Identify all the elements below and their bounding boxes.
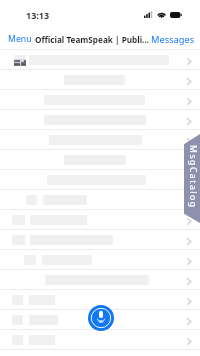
staticText: Menu bbox=[8, 33, 32, 45]
button[interactable] bbox=[0, 130, 200, 150]
button[interactable]: Menu bbox=[8, 33, 32, 45]
button[interactable] bbox=[0, 210, 200, 230]
button[interactable] bbox=[0, 90, 200, 110]
staticText: MsgCatalog bbox=[187, 145, 199, 209]
staticText: Messages bbox=[151, 33, 195, 46]
button[interactable] bbox=[0, 50, 200, 70]
staticText: 13:13 bbox=[26, 9, 50, 21]
button[interactable] bbox=[0, 190, 200, 210]
button[interactable]: MsgCatalog bbox=[184, 134, 200, 223]
button[interactable] bbox=[0, 330, 200, 350]
button[interactable] bbox=[0, 230, 200, 250]
button[interactable] bbox=[0, 250, 200, 270]
button[interactable] bbox=[0, 170, 200, 190]
button[interactable] bbox=[0, 290, 200, 310]
button[interactable] bbox=[0, 310, 200, 330]
button[interactable] bbox=[0, 270, 200, 290]
button[interactable] bbox=[0, 70, 200, 90]
button[interactable]: Record voice message bbox=[88, 305, 114, 331]
button[interactable] bbox=[0, 150, 200, 170]
staticText: Official TeamSpeak | Publi... bbox=[35, 34, 150, 45]
button[interactable]: Messages bbox=[151, 33, 195, 46]
button[interactable] bbox=[0, 110, 200, 130]
